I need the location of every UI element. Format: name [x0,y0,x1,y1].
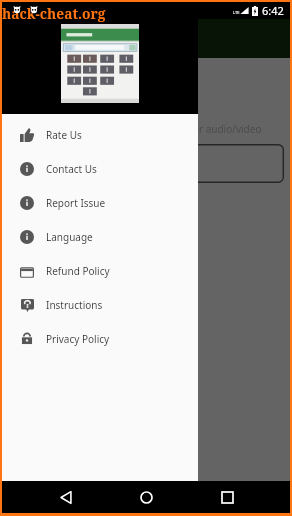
staticText: Record your screen with or audio/video [77,122,262,136]
button[interactable]: Language [2,220,198,254]
button[interactable]: Refund Policy [2,254,198,288]
staticText: Contact Us [46,162,97,176]
staticText: Rate Us [46,128,82,142]
button[interactable]: Rate Us [2,118,198,152]
button[interactable]: Privacy Policy [2,322,198,356]
staticText: Language [46,230,93,244]
staticText: Privacy Policy [46,332,110,346]
staticText: Instructions [46,298,103,312]
staticText: 6:42 [262,3,284,18]
button[interactable]: Back [49,481,83,513]
button[interactable]: Instructions [2,288,198,322]
button[interactable]: Home [129,481,163,513]
staticText: hack-cheat.org [2,4,106,23]
button[interactable]: Contact Us [2,152,198,186]
staticText: LTE [233,10,240,15]
button[interactable]: Recents [210,481,244,513]
staticText: Report Issue [46,196,106,210]
staticText: Refund Policy [46,264,110,278]
button[interactable]: Report Issue [2,186,198,220]
